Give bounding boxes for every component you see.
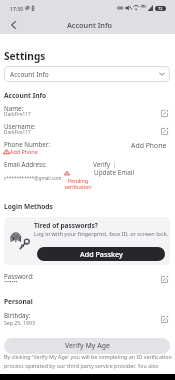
staticText: Name: <box>4 104 24 112</box>
staticText: 17:30 <box>10 5 24 12</box>
staticText: ••••••• <box>4 278 18 285</box>
staticText: Add Passkey <box>80 249 123 259</box>
staticText: Personal <box>4 297 33 306</box>
staticText: Account Info <box>67 20 113 30</box>
staticText: Email Address: <box>4 160 47 168</box>
staticText: DarkFire117 <box>4 111 31 117</box>
button[interactable]: Update Email <box>94 168 135 177</box>
button[interactable]: Account Info <box>4 66 170 82</box>
button[interactable]: Back <box>5 17 21 33</box>
staticText: Birthday: <box>4 311 31 319</box>
button[interactable]: Edit <box>159 314 169 324</box>
staticText: Verify My Age <box>65 341 110 351</box>
staticText: By clicking 'Verify My Age' you will be … <box>4 353 174 370</box>
button[interactable]: Add Passkey <box>37 247 165 261</box>
staticText: Verify <box>93 160 111 169</box>
staticText: Settings <box>4 49 46 63</box>
staticText: DarkFire117 <box>4 129 31 135</box>
button[interactable]: Verify My Age <box>4 338 170 354</box>
staticText: Password: <box>4 272 34 280</box>
button[interactable]: Edit <box>159 274 169 284</box>
staticText: Log in with your fingerprint, face ID, o… <box>34 230 170 238</box>
button[interactable]: Edit <box>159 126 169 136</box>
staticText: Sep 25, 1993 <box>4 319 35 326</box>
staticText: | <box>113 161 117 168</box>
button[interactable]: Add Phone <box>3 148 38 155</box>
staticText: Phone Number: <box>4 140 51 148</box>
staticText: Login Methods <box>4 202 53 211</box>
staticText: Tired of passwords? <box>34 221 98 230</box>
staticText: 72 <box>158 6 163 11</box>
button[interactable]: Edit <box>159 108 169 118</box>
staticText: Add Phone <box>10 148 38 155</box>
staticText: Pending verification <box>64 177 92 191</box>
button[interactable]: Add Phone <box>131 141 167 150</box>
staticText: Account Info <box>10 70 49 79</box>
button[interactable]: Verify <box>93 160 117 169</box>
staticText: Username: <box>4 122 36 130</box>
staticText: Account Info <box>4 91 47 100</box>
staticText: c***********@gmail.com <box>4 175 62 181</box>
